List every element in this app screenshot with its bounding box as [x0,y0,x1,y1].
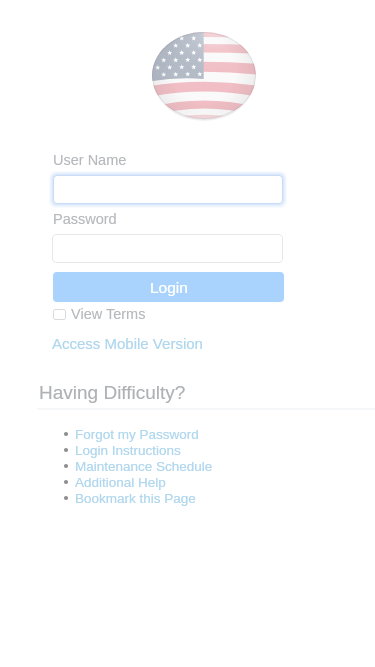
staticText: Login [150,279,188,296]
staticText: Bookmark this Page [75,491,196,506]
button[interactable]: Access Mobile Version [52,335,203,352]
staticText: View Terms [71,306,146,322]
staticText: Forgot my Password [75,427,199,442]
staticText: Having Difficulty? [39,382,186,403]
button[interactable]: Bookmark this Page [64,490,196,506]
button[interactable]: Maintenance Schedule [64,458,213,474]
button[interactable] [48,170,288,209]
button[interactable]: View Terms [53,306,146,322]
staticText: Maintenance Schedule [75,459,213,474]
button[interactable] [52,234,283,263]
button[interactable]: Forgot my Password [64,426,199,442]
staticText: User Name [53,152,127,168]
button[interactable]: Login Instructions [64,442,181,458]
staticText: Login Instructions [75,443,181,458]
staticText: Additional Help [75,475,166,490]
button[interactable]: Additional Help [64,474,166,490]
button[interactable]: Login [53,272,284,302]
staticText: Password [53,211,117,227]
